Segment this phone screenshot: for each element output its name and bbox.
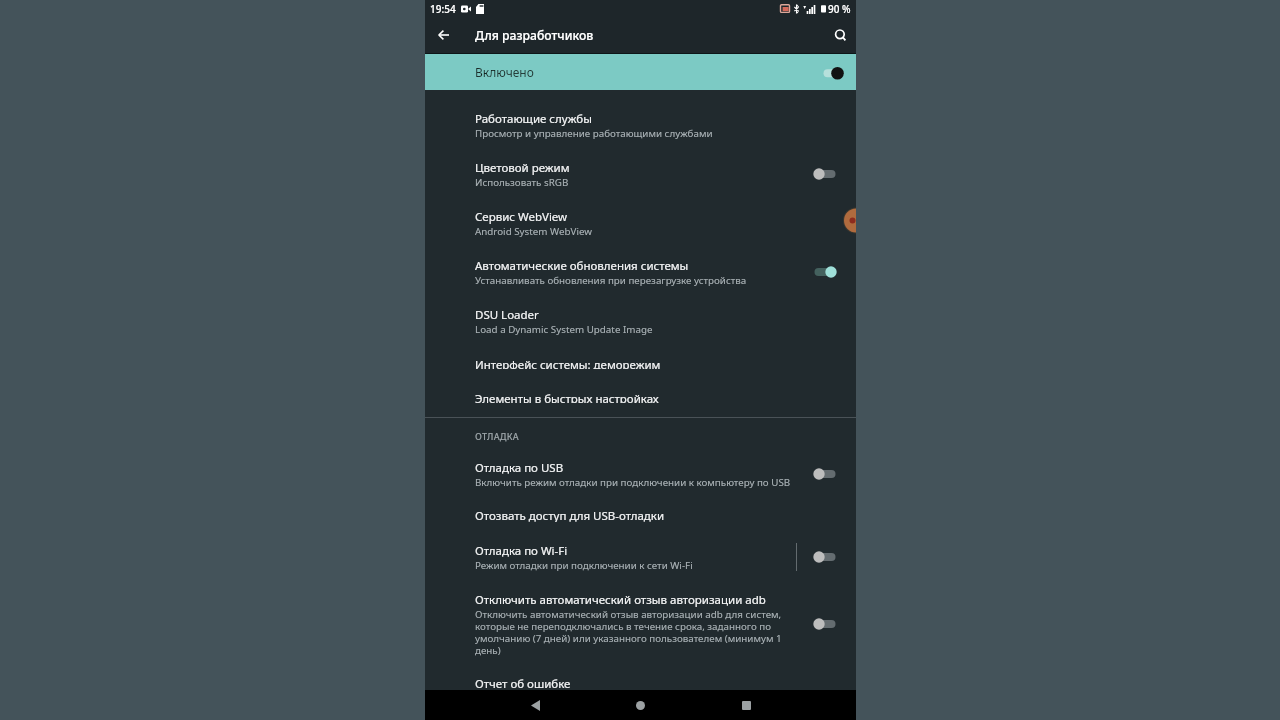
button[interactable]: Back [425, 17, 462, 53]
staticText: Включено [475, 64, 534, 80]
button[interactable]: Отключить автоматический отзыв авторизац… [425, 571, 856, 656]
other: Recording indicator [843, 208, 856, 233]
staticText: Android System WebView [475, 225, 592, 237]
staticText: Отключить автоматический отзыв авторизац… [475, 592, 766, 608]
staticText: Режим отладки при подключении к сети Wi-… [475, 559, 693, 571]
button[interactable]: Элементы в быстрых настройках [425, 369, 856, 403]
staticText: Цветовой режим [475, 160, 570, 176]
button[interactable]: Toggle [810, 463, 840, 485]
button[interactable]: Toggle [810, 261, 840, 283]
button[interactable]: Отладка по Wi-Fi [425, 522, 856, 571]
staticText: ОТЛАДКА [475, 430, 519, 442]
staticText: Включить режим отладки при подключении к… [475, 476, 791, 488]
button[interactable]: Search [825, 17, 856, 53]
staticText: Элементы в быстрых настройках [475, 391, 659, 403]
staticText: Просмотр и управление работающими служба… [475, 127, 713, 139]
staticText: Устанавливать обновления при перезагрузк… [475, 274, 747, 286]
button[interactable]: Отладка по USB [425, 439, 856, 488]
button[interactable]: Включено [425, 54, 856, 90]
staticText: Сервис WebView [475, 209, 568, 225]
button[interactable]: Master toggle [818, 61, 848, 83]
staticText: Отладка по USB [475, 460, 564, 476]
button[interactable]: Цветовой режим [425, 139, 856, 188]
button[interactable]: Отчет об ошибке [425, 656, 856, 690]
staticText: Для разработчиков [475, 27, 594, 44]
button[interactable]: Работающие службы [425, 90, 856, 139]
staticText: 19:54 [430, 2, 456, 16]
button[interactable]: Интерфейс системы: деморежим [425, 335, 856, 369]
button[interactable]: Toggle [810, 613, 840, 635]
button[interactable]: Recents [726, 690, 766, 720]
staticText: DSU Loader [475, 307, 539, 323]
button[interactable]: Сервис WebView [425, 188, 856, 237]
staticText: Отозвать доступ для USB-отладки [475, 508, 665, 522]
button[interactable]: Отозвать доступ для USB-отладки [425, 488, 856, 522]
staticText: Использовать sRGB [475, 176, 569, 188]
staticText: Отладка по Wi-Fi [475, 543, 568, 559]
button[interactable]: Toggle [810, 163, 840, 185]
button[interactable]: Автоматические обновления системы [425, 237, 856, 286]
staticText: Отключить автоматический отзыв авторизац… [475, 608, 792, 656]
button[interactable]: DSU Loader [425, 286, 856, 335]
staticText: Интерфейс системы: деморежим [475, 357, 661, 369]
staticText: 90 % [828, 2, 851, 16]
button[interactable]: Home [620, 690, 660, 720]
staticText: Автоматические обновления системы [475, 258, 689, 274]
button[interactable]: Back [515, 690, 555, 720]
staticText: Работающие службы [475, 111, 592, 127]
button[interactable]: Toggle [810, 546, 840, 568]
staticText: Отчет об ошибке [475, 676, 571, 690]
staticText: Load a Dynamic System Update Image [475, 323, 653, 335]
